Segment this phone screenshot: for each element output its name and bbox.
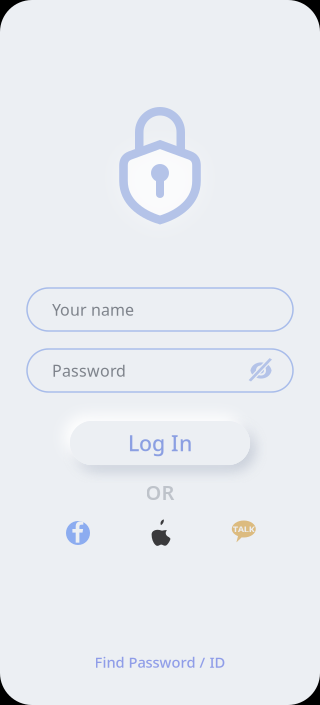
staticText: OR [145,479,174,506]
staticText: Log In [128,429,192,457]
button[interactable]: Sign in with Apple [119,518,202,548]
button[interactable]: Password [27,349,293,392]
button[interactable]: Sign in with Kakao Talk [202,518,285,548]
button[interactable]: Your name [27,288,293,331]
staticText: Your name [52,299,134,320]
button[interactable]: Find Password / ID [70,650,250,674]
button[interactable]: Log In [50,408,270,478]
button[interactable]: Sign in with Facebook [36,518,119,548]
staticText: TALK [233,523,255,535]
staticText: Find Password / ID [94,652,225,672]
staticText: Password [52,360,126,381]
